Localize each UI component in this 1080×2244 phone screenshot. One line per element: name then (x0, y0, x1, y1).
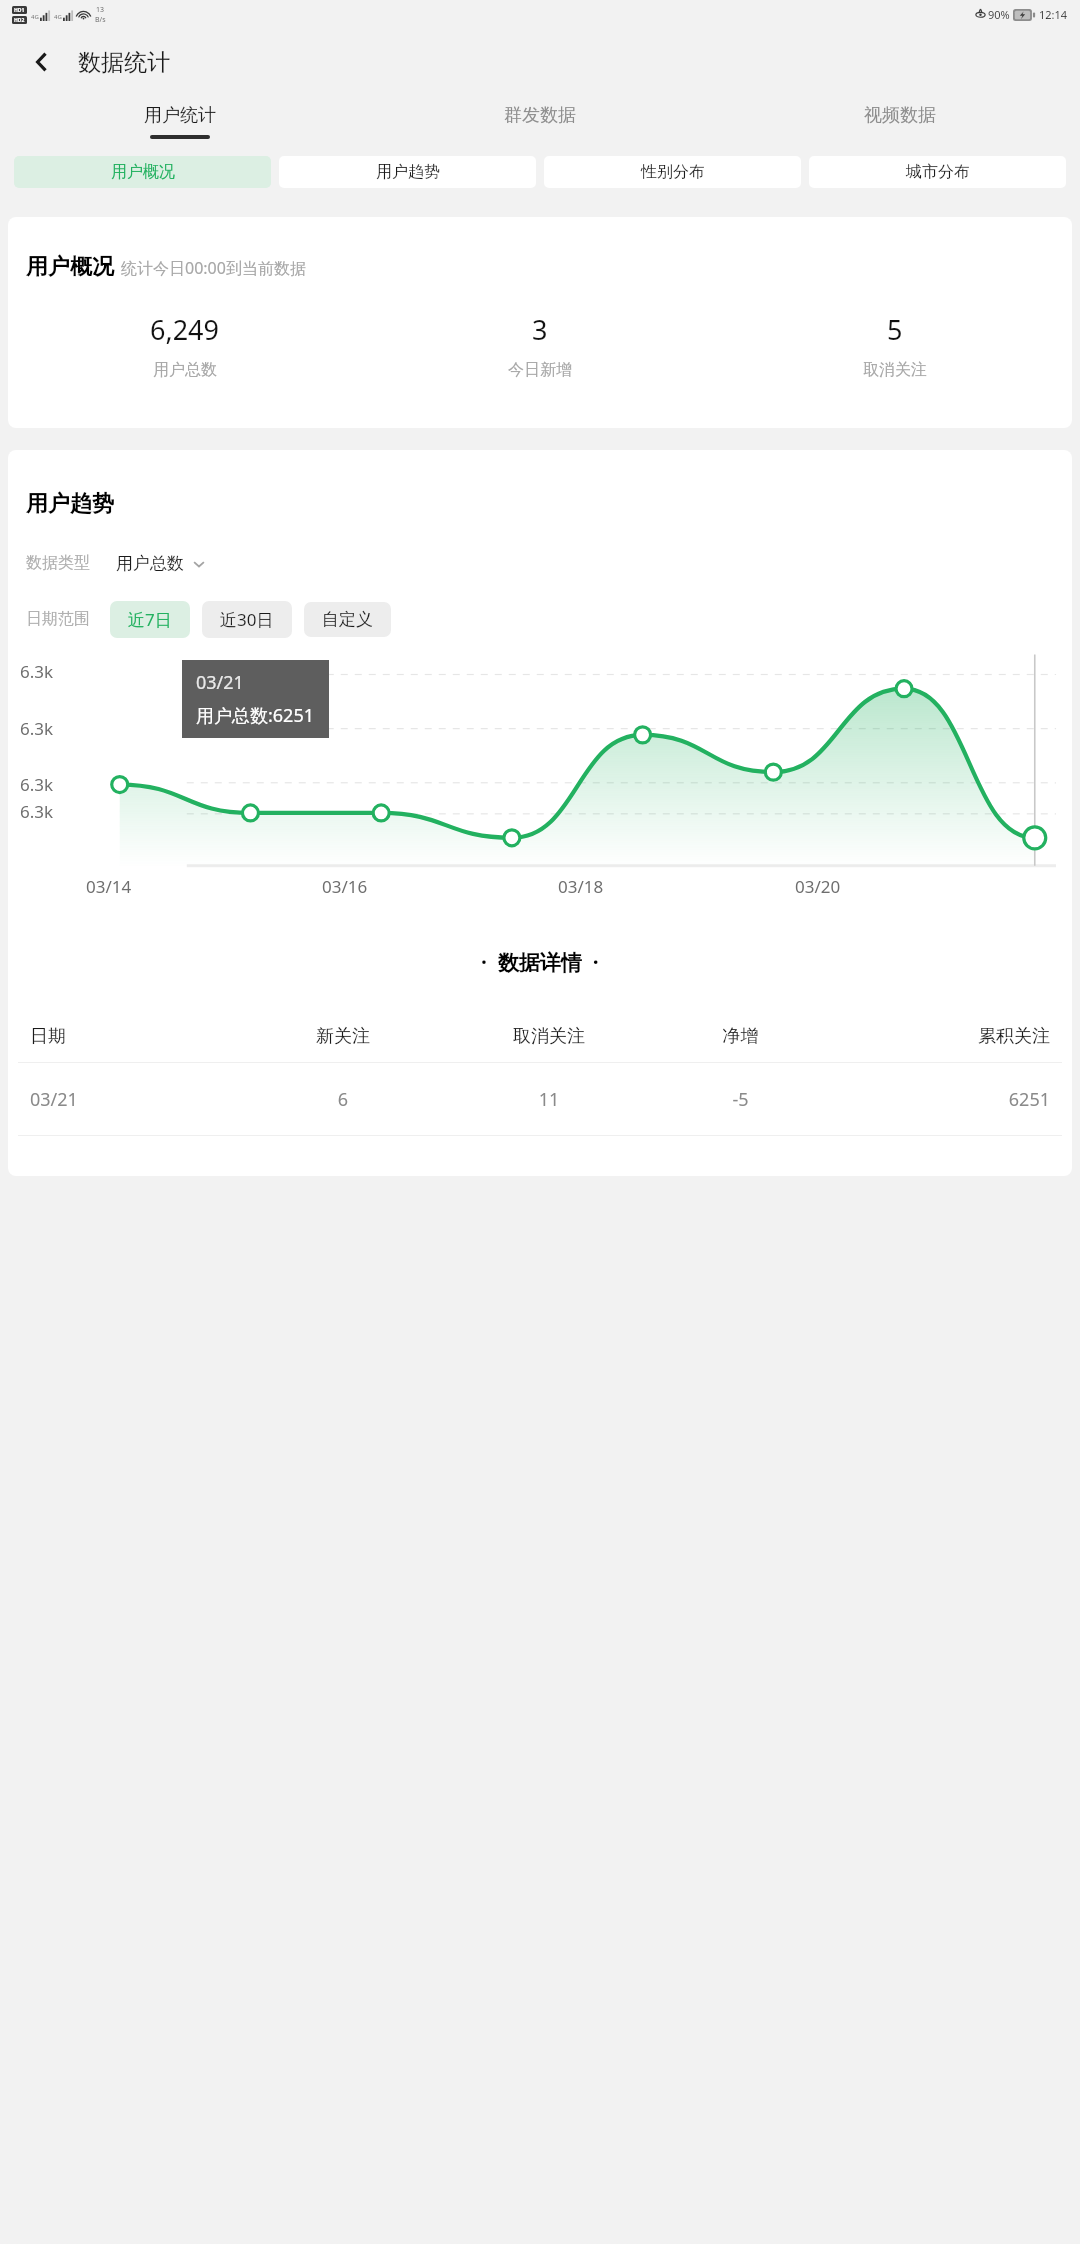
staticText: 视频数据 (864, 104, 936, 127)
staticText: 用户统计 (144, 104, 216, 127)
button[interactable]: 视频数据 (720, 95, 1080, 147)
staticText: 用户概况 (26, 253, 114, 281)
staticText: 用户趋势 (376, 162, 440, 182)
button[interactable]: 自定义 (304, 602, 391, 637)
button[interactable]: 群发数据 (360, 95, 720, 147)
staticText: 城市分布 (906, 162, 970, 182)
staticText: 3 (532, 311, 548, 348)
staticText: 性别分布 (641, 162, 705, 182)
staticText: 用户概况 (111, 162, 175, 182)
staticText: 6.3k (20, 800, 54, 823)
staticText: 6,249 (150, 311, 220, 348)
button[interactable]: 03/21 (8, 1063, 1072, 1135)
button[interactable]: 用户统计 (0, 95, 360, 147)
staticText: 用户总数:6251 (196, 703, 315, 728)
staticText: 统计今日00:00到当前数据 (121, 257, 306, 279)
staticText: 用户总数 (153, 360, 217, 380)
staticText: 用户趋势 (26, 490, 114, 518)
button[interactable]: 用户趋势 (279, 156, 536, 188)
button[interactable]: 近7日 (110, 601, 190, 638)
staticText: 6.3k (20, 773, 54, 796)
button[interactable]: 城市分布 (809, 156, 1066, 188)
staticText: 6.3k (20, 717, 54, 740)
staticText: 日期范围 (26, 609, 90, 629)
button[interactable]: 用户概况 (14, 156, 271, 188)
staticText: B/s (95, 15, 106, 25)
staticText: 03/18 (558, 875, 604, 898)
staticText: 今日新增 (508, 360, 572, 380)
staticText: 取消关注 (441, 1025, 657, 1048)
button[interactable]: 性别分布 (544, 156, 801, 188)
staticText: 4G (54, 13, 62, 21)
staticText: 5 (887, 311, 903, 348)
staticText: 03/21 (30, 1087, 245, 1112)
staticText: 12:14 (1039, 7, 1068, 22)
staticText: 03/20 (795, 875, 841, 898)
staticText: 净增 (657, 1025, 824, 1048)
button[interactable]: 近30日 (202, 601, 292, 638)
staticText: 6251 (824, 1087, 1050, 1112)
staticText: 4G (31, 13, 39, 21)
staticText: HD2 (14, 17, 25, 24)
staticText: 03/21 (196, 670, 244, 695)
staticText: 群发数据 (504, 104, 576, 127)
staticText: HD1 (14, 7, 25, 14)
staticText: 取消关注 (863, 360, 927, 380)
staticText: 近30日 (220, 608, 274, 631)
staticText: 数据类型 (26, 553, 90, 573)
staticText: 90% (988, 7, 1010, 22)
staticText: 数据统计 (78, 48, 170, 77)
staticText: 日期 (30, 1025, 245, 1048)
staticText: 自定义 (322, 609, 373, 630)
staticText: 03/16 (322, 875, 368, 898)
staticText: 累积关注 (824, 1025, 1050, 1048)
staticText: 近7日 (128, 608, 172, 631)
staticText: -5 (657, 1087, 824, 1112)
staticText: 13 (96, 5, 105, 15)
staticText: · 数据详情 · (481, 948, 599, 977)
staticText: 6 (245, 1087, 441, 1112)
button[interactable]: Back (20, 40, 64, 84)
staticText: 用户总数 (116, 553, 184, 574)
button[interactable]: 用户总数 (116, 553, 206, 574)
staticText: 11 (441, 1087, 657, 1112)
staticText: 6.3k (20, 660, 54, 683)
staticText: 新关注 (245, 1025, 441, 1048)
staticText: 03/14 (86, 875, 132, 898)
